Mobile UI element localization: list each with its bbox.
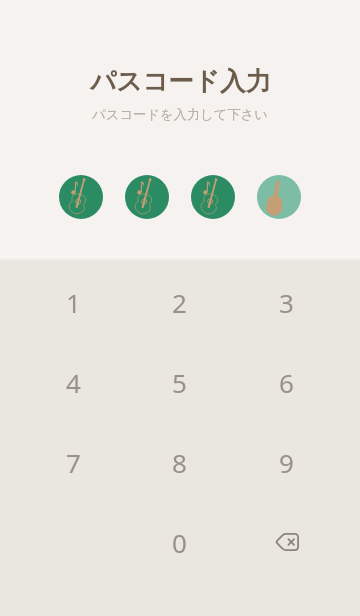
- staticText: 8: [172, 445, 187, 480]
- staticText: 5: [172, 365, 187, 400]
- staticText: 1: [66, 285, 81, 320]
- staticText: パスコード入力: [90, 65, 271, 97]
- button[interactable]: 5: [126, 342, 233, 422]
- button[interactable]: 4: [20, 342, 126, 422]
- button[interactable]: 1: [20, 262, 126, 342]
- button[interactable]: 3: [233, 262, 340, 342]
- button[interactable]: 6: [233, 342, 340, 422]
- other: Passcode progress: 3 of 4 entered: [0, 175, 360, 219]
- staticText: 6: [279, 365, 294, 400]
- button[interactable]: 7: [20, 422, 126, 502]
- button[interactable]: 2: [126, 262, 233, 342]
- button[interactable]: 0: [126, 502, 233, 582]
- staticText: 3: [279, 285, 294, 320]
- button[interactable]: 9: [233, 422, 340, 502]
- button[interactable]: 8: [126, 422, 233, 502]
- staticText: パスコードを入力して下さい: [92, 106, 268, 123]
- button[interactable]: Delete: [233, 502, 340, 582]
- staticText: 9: [279, 445, 294, 480]
- staticText: 2: [172, 285, 187, 320]
- staticText: 0: [172, 525, 187, 560]
- staticText: 4: [66, 365, 81, 400]
- staticText: 7: [66, 445, 81, 480]
